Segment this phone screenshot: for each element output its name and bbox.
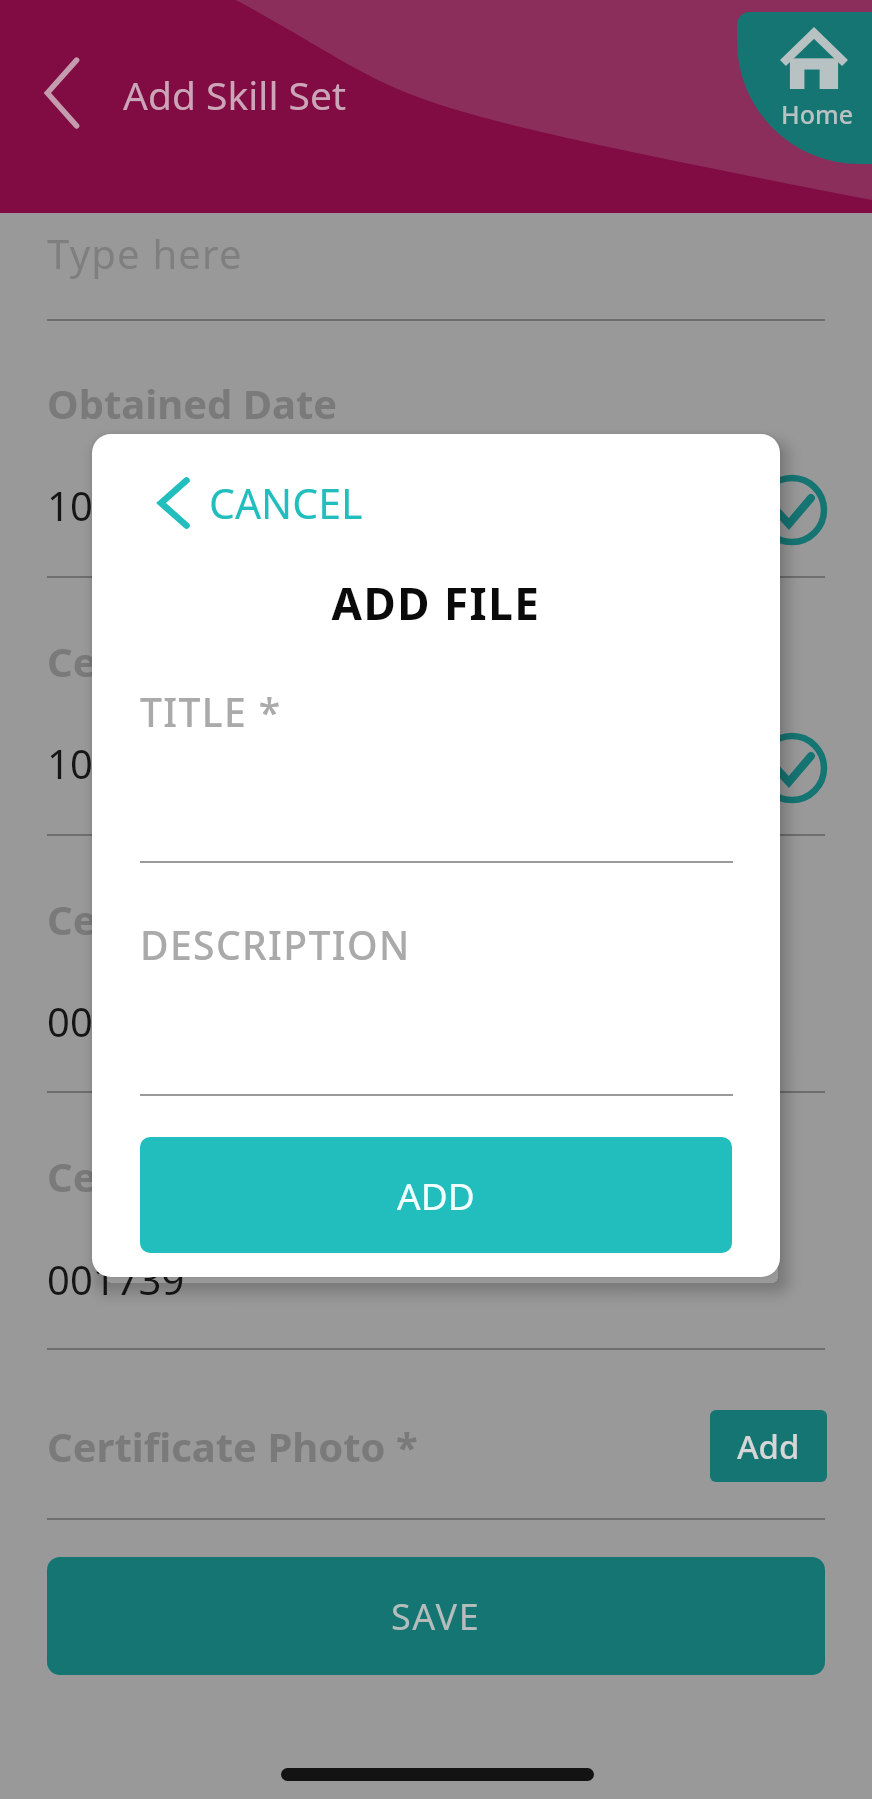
- staticText: Add Skill Set: [123, 68, 347, 121]
- staticText: ADD: [397, 1170, 475, 1220]
- staticText: Certificate Number: [47, 892, 432, 946]
- button[interactable]: ADD: [140, 1137, 732, 1253]
- staticText: TITLE *: [140, 685, 282, 738]
- staticText: 10/04/2021: [47, 478, 260, 532]
- staticText: Add: [737, 1424, 800, 1469]
- staticText: CANCEL: [209, 475, 363, 531]
- button[interactable]: Back: [45, 58, 79, 128]
- button[interactable]: Verified: [757, 475, 827, 545]
- button[interactable]: Type here: [47, 214, 825, 306]
- staticText: 10/04/2023: [47, 736, 260, 790]
- button[interactable]: Verified: [757, 733, 827, 803]
- staticText: 001739: [47, 994, 185, 1048]
- button[interactable]: SAVE: [47, 1557, 825, 1675]
- button[interactable]: [140, 674, 733, 863]
- button[interactable]: [140, 907, 733, 1096]
- staticText: DESCRIPTION: [140, 918, 411, 971]
- staticText: ADD FILE: [92, 573, 780, 633]
- button[interactable]: CANCEL: [158, 468, 363, 538]
- button[interactable]: Add: [710, 1410, 827, 1482]
- staticText: Certificate Photo *: [47, 1419, 418, 1473]
- staticText: Certificate Expiry Date: [47, 634, 496, 688]
- staticText: Obtained Date: [47, 376, 338, 430]
- staticText: SAVE: [391, 1592, 481, 1641]
- staticText: Home: [781, 97, 854, 131]
- staticText: Certificate Name: [47, 1149, 387, 1203]
- button[interactable]: Home: [737, 12, 872, 164]
- staticText: Type here: [47, 226, 243, 280]
- staticText: 001739: [47, 1252, 185, 1306]
